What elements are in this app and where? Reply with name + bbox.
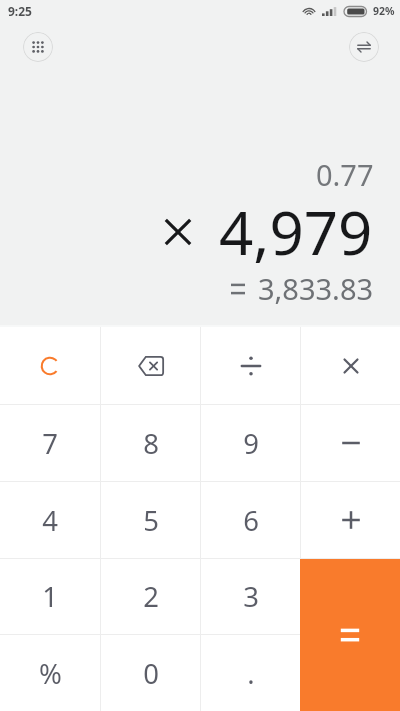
- button[interactable]: Keypad: [23, 32, 53, 62]
- button[interactable]: Minus: [301, 405, 400, 481]
- button[interactable]: 7: [0, 405, 100, 481]
- staticText: 9:25: [8, 3, 32, 19]
- button[interactable]: Plus: [301, 482, 400, 558]
- button[interactable]: .: [201, 635, 300, 711]
- button[interactable]: 1: [0, 559, 100, 634]
- button[interactable]: 6: [201, 482, 300, 558]
- button[interactable]: 8: [101, 405, 200, 481]
- button[interactable]: 4: [0, 482, 100, 558]
- staticText: .: [247, 655, 255, 692]
- staticText: 7: [42, 425, 58, 462]
- staticText: 3: [243, 578, 259, 615]
- button[interactable]: 5: [101, 482, 200, 558]
- button[interactable]: 3: [201, 559, 300, 634]
- staticText: 5: [143, 502, 159, 539]
- staticText: 4: [42, 502, 58, 539]
- button[interactable]: %: [0, 635, 100, 711]
- staticText: 1: [42, 578, 58, 615]
- button[interactable]: Backspace: [101, 327, 200, 404]
- staticText: %: [39, 655, 62, 692]
- staticText: 92%: [373, 4, 395, 18]
- staticText: 0: [143, 655, 159, 692]
- button[interactable]: Equals: [300, 559, 400, 711]
- button[interactable]: Multiply: [301, 327, 400, 404]
- staticText: 9: [243, 425, 259, 462]
- button[interactable]: 0: [101, 635, 200, 711]
- staticText: 0.77: [316, 155, 374, 194]
- staticText: 2: [143, 578, 159, 615]
- staticText: 3,833.83: [258, 269, 374, 308]
- staticText: 6: [243, 502, 259, 539]
- button[interactable]: Divide: [201, 327, 300, 404]
- button[interactable]: Unit converter: [349, 32, 379, 62]
- staticText: 4,979: [219, 191, 373, 273]
- staticText: 8: [143, 425, 159, 462]
- button[interactable]: Clear: [0, 327, 100, 404]
- button[interactable]: 2: [101, 559, 200, 634]
- button[interactable]: 9: [201, 405, 300, 481]
